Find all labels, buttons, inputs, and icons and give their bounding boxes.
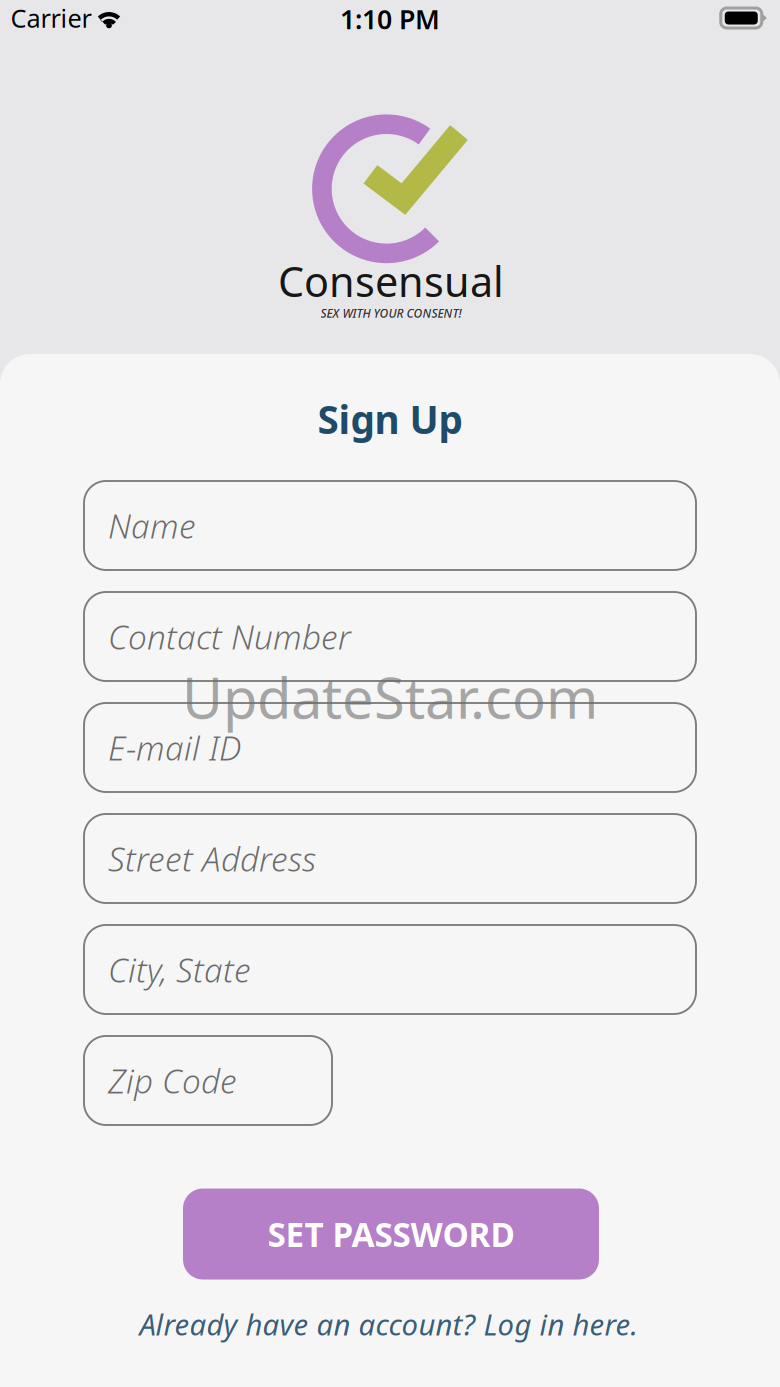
button[interactable]: Zip Code <box>84 1036 332 1125</box>
staticText: Name <box>108 503 196 548</box>
staticText: 1:10 PM <box>340 1 440 37</box>
button[interactable]: E-mail ID <box>84 703 696 792</box>
button[interactable]: Name <box>84 481 696 570</box>
staticText: Contact Number <box>108 614 351 659</box>
button[interactable]: SET PASSWORD <box>183 1188 599 1279</box>
button[interactable]: Street Address <box>84 814 696 903</box>
staticText: Already have an account? Log in here. <box>139 1304 638 1343</box>
staticText: Carrier <box>10 1 91 35</box>
button[interactable]: City, State <box>84 925 696 1014</box>
button[interactable]: Already have an account? Log in here. <box>139 1304 638 1343</box>
button[interactable]: Contact Number <box>84 592 696 681</box>
staticText: Consensual <box>278 254 504 308</box>
staticText: Street Address <box>108 836 316 881</box>
staticText: City, State <box>108 947 251 992</box>
staticText: Sign Up <box>317 393 462 445</box>
staticText: Zip Code <box>108 1058 237 1103</box>
staticText: UpdateStar.com <box>182 660 598 734</box>
staticText: E-mail ID <box>108 725 241 770</box>
staticText: SEX WITH YOUR CONSENT! <box>320 305 461 321</box>
staticText: SET PASSWORD <box>267 1212 514 1256</box>
